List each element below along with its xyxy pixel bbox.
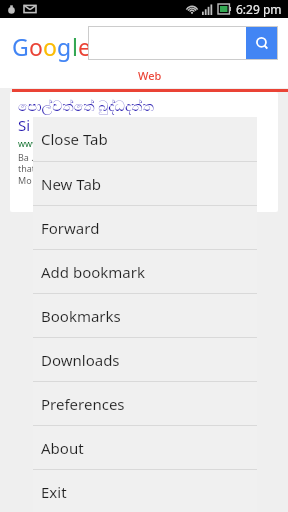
button[interactable]: Close Tab — [33, 117, 257, 161]
staticText: Downloads — [41, 350, 120, 370]
staticText: New Tab — [41, 174, 102, 194]
button[interactable]: Forward — [33, 206, 257, 249]
button[interactable]: About — [33, 426, 257, 469]
staticText: o — [43, 31, 57, 62]
staticText: o — [29, 31, 43, 62]
button[interactable]: Search — [246, 26, 278, 60]
staticText: Ba ... that that text continues here Mo — [18, 151, 119, 187]
staticText: Preferences — [41, 394, 125, 414]
staticText: Bookmarks — [41, 306, 121, 326]
staticText: Web — [138, 68, 162, 83]
staticText: Add bookmark — [41, 262, 145, 282]
button[interactable]: Exit — [33, 470, 257, 512]
staticText: පොල්වත්තේ බුද්ධදත්ත — [18, 96, 154, 115]
staticText: Exit — [41, 482, 67, 502]
staticText: g — [57, 31, 72, 62]
button[interactable]: Preferences — [33, 382, 257, 425]
button[interactable]: පොල්වත්තේ බුද්ධදත්ත — [10, 92, 278, 212]
button[interactable]: Bookmarks — [33, 294, 257, 337]
staticText: G — [12, 31, 29, 62]
staticText: www.example.lk — [18, 137, 87, 149]
staticText: l — [72, 31, 78, 62]
staticText: Close Tab — [41, 129, 108, 149]
button[interactable]: New Tab — [33, 162, 257, 205]
button[interactable]: Web — [12, 68, 288, 92]
button[interactable]: Add bookmark — [33, 250, 257, 293]
staticText: e — [78, 31, 91, 62]
staticText: About — [41, 438, 84, 458]
staticText: 6:29 pm — [236, 1, 282, 17]
staticText: Si — [18, 115, 31, 135]
button[interactable]: Downloads — [33, 338, 257, 381]
staticText: Forward — [41, 218, 100, 238]
